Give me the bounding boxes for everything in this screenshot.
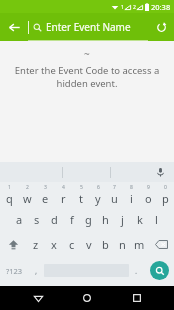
button[interactable]: g [80, 207, 97, 232]
button[interactable]: h [97, 207, 114, 232]
staticText: i [130, 191, 133, 206]
button[interactable]: m [131, 232, 148, 257]
staticText: Enter Event Name [46, 20, 131, 34]
staticText: n [119, 237, 126, 252]
button[interactable]: 5 [72, 182, 89, 207]
button[interactable]: Home [75, 286, 99, 310]
staticText: 5 [80, 184, 83, 191]
button[interactable]: ?123 [0, 257, 29, 284]
button[interactable]: 9 [140, 182, 157, 207]
button[interactable]: l [148, 207, 165, 232]
staticText: 8 [130, 184, 133, 191]
button[interactable]: , [29, 257, 44, 284]
staticText: 2 [26, 184, 29, 191]
button[interactable]: Back [26, 286, 50, 310]
staticText: 3 [44, 184, 47, 191]
button[interactable]: 0 [157, 182, 174, 207]
button[interactable]: Shift [0, 232, 27, 257]
button[interactable]: 2 [18, 182, 36, 207]
staticText: m [134, 237, 145, 252]
button[interactable]: 1 [0, 182, 18, 207]
button[interactable]: n [114, 232, 131, 257]
button[interactable]: j [114, 207, 131, 232]
staticText: c [69, 237, 75, 252]
staticText: d [51, 212, 58, 227]
staticText: 2 [133, 4, 136, 11]
button[interactable]: 8 [123, 182, 140, 207]
staticText: 1 [8, 184, 11, 191]
staticText: ?123 [6, 266, 23, 276]
staticText: g [85, 212, 92, 227]
button[interactable]: 4 [54, 182, 72, 207]
staticText: 6 [97, 184, 100, 191]
button[interactable]: v [80, 232, 97, 257]
button[interactable]: 7 [106, 182, 123, 207]
button[interactable]: Search [150, 261, 169, 280]
button[interactable]: Refresh [148, 14, 174, 40]
staticText: z [33, 237, 39, 252]
button[interactable]: Backspace [148, 232, 174, 257]
button[interactable]: b [97, 232, 114, 257]
staticText: 1 [121, 4, 124, 11]
button[interactable]: 6 [89, 182, 106, 207]
staticText: r [61, 191, 66, 206]
button[interactable]: . [129, 257, 144, 284]
staticText: 4 [62, 184, 65, 191]
button[interactable]: d [46, 207, 63, 232]
button[interactable]: Voice input [153, 165, 167, 179]
button[interactable]: a [10, 207, 28, 232]
button[interactable]: c [63, 232, 80, 257]
button[interactable]: x [45, 232, 63, 257]
staticText: u [111, 191, 118, 206]
staticText: 0 [164, 184, 167, 191]
staticText: 9 [147, 184, 150, 191]
staticText: y [95, 191, 101, 206]
staticText: x [51, 237, 57, 252]
staticText: o [145, 191, 152, 206]
staticText: l [155, 212, 158, 227]
staticText: 7 [113, 184, 116, 191]
staticText: , [35, 265, 38, 276]
button[interactable]: 3 [36, 182, 54, 207]
button[interactable]: Back [0, 13, 28, 41]
button[interactable]: k [131, 207, 148, 232]
button[interactable]: f [63, 207, 80, 232]
staticText: . [135, 265, 138, 276]
staticText: 20:38 [151, 2, 171, 12]
staticText: e [42, 191, 49, 206]
staticText: f [70, 212, 74, 227]
staticText: q [6, 191, 13, 206]
staticText: v [86, 237, 92, 252]
button[interactable]: s [28, 207, 46, 232]
staticText: k [137, 212, 143, 227]
staticText: s [34, 212, 40, 227]
button[interactable]: z [27, 232, 45, 257]
staticText: a [16, 212, 23, 227]
staticText: h [102, 212, 109, 227]
staticText: ~ [84, 47, 90, 61]
button[interactable]: Recent apps [125, 286, 149, 310]
staticText: w [23, 191, 32, 206]
staticText: Enter the Event Code to access a hidden … [8, 64, 166, 90]
staticText: j [121, 212, 124, 227]
staticText: p [162, 191, 169, 206]
staticText: b [102, 237, 109, 252]
staticText: t [79, 191, 83, 206]
